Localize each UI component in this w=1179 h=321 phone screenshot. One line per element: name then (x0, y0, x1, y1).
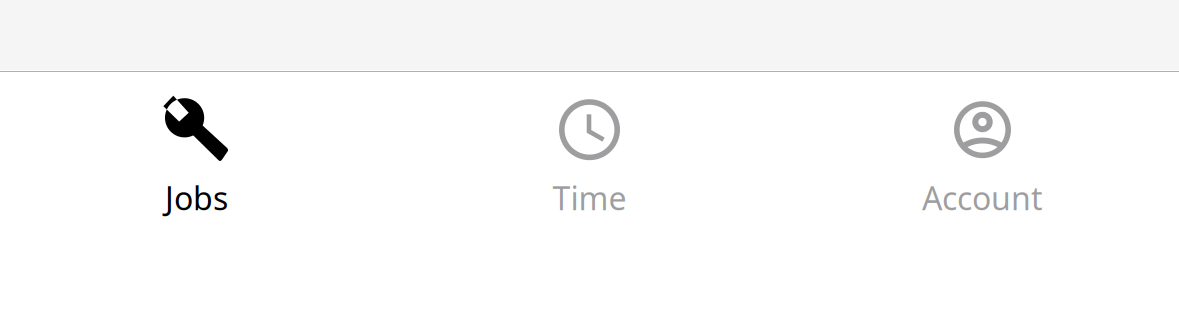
staticText: Jobs (165, 177, 228, 219)
staticText: Account (922, 177, 1043, 219)
button[interactable]: Account (786, 72, 1179, 321)
button[interactable]: Time (393, 72, 786, 321)
button[interactable]: Jobs (0, 72, 393, 321)
staticText: Time (552, 177, 626, 219)
